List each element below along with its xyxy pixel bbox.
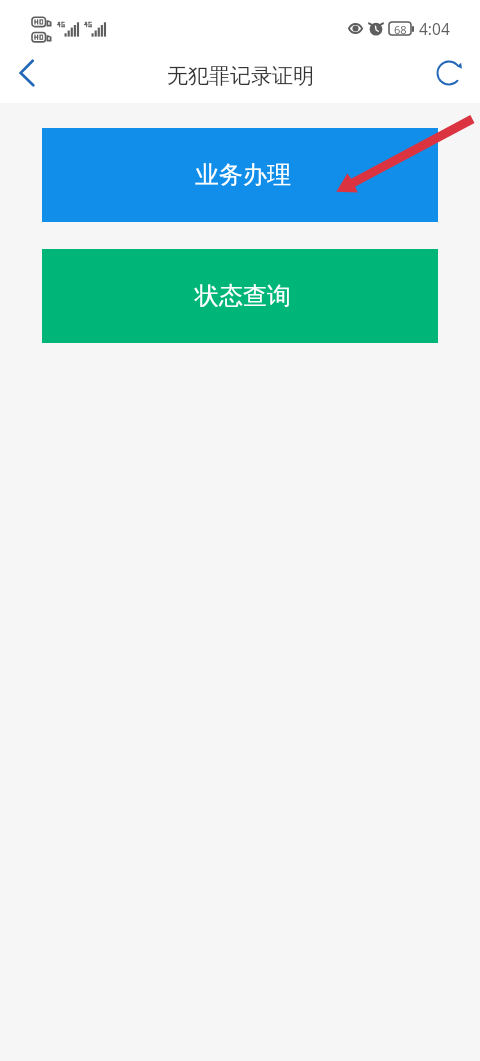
staticText: 状态查询 xyxy=(195,281,291,311)
button[interactable]: Back xyxy=(0,48,52,100)
button[interactable]: Refresh xyxy=(422,46,476,100)
staticText: 无犯罪记录证明 xyxy=(167,63,314,89)
button[interactable]: 状态查询 xyxy=(42,249,438,343)
staticText: 68 xyxy=(394,22,407,35)
staticText: 4:04 xyxy=(419,18,450,39)
staticText: 业务办理 xyxy=(195,160,291,190)
button[interactable]: 业务办理 xyxy=(42,128,438,222)
